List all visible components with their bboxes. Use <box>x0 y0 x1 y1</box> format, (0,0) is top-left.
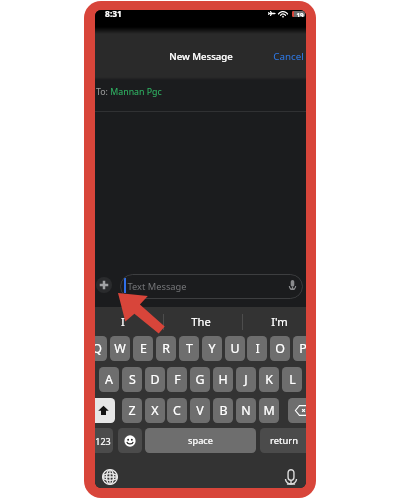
staticText: E <box>140 340 147 357</box>
button[interactable]: Backspace <box>288 398 306 423</box>
button[interactable]: O <box>270 336 290 361</box>
button[interactable]: A <box>99 367 119 392</box>
button[interactable]: N <box>236 398 256 423</box>
staticText: F <box>174 371 181 388</box>
staticText: Cancel <box>273 50 304 63</box>
staticText: S <box>129 371 136 388</box>
button[interactable]: T <box>179 336 199 361</box>
button[interactable]: I <box>95 312 162 331</box>
button[interactable]: U <box>225 336 245 361</box>
staticText: J <box>244 371 248 388</box>
staticText: V <box>196 402 204 419</box>
button[interactable]: Add attachment <box>96 277 112 293</box>
button[interactable]: The <box>162 312 240 331</box>
staticText: Text Message <box>127 280 187 293</box>
button[interactable]: Dictate <box>285 469 297 485</box>
button[interactable]: New Message <box>157 47 244 65</box>
staticText: I'm <box>271 314 288 329</box>
button[interactable]: L <box>282 367 302 392</box>
staticText: X <box>151 402 159 419</box>
staticText: C <box>173 402 181 419</box>
button[interactable]: V <box>190 398 210 423</box>
staticText: return <box>270 434 298 447</box>
button[interactable]: H <box>213 367 233 392</box>
button[interactable]: D <box>145 367 165 392</box>
button[interactable]: J <box>236 367 256 392</box>
staticText: N <box>241 402 251 419</box>
staticText: Z <box>128 402 136 419</box>
staticText: 123 <box>95 435 111 447</box>
staticText: I <box>121 314 125 329</box>
staticText: Mannan Pgc <box>110 86 162 98</box>
button[interactable]: Z <box>122 398 142 423</box>
staticText: U <box>230 340 240 357</box>
staticText: space <box>188 434 213 447</box>
staticText: To: <box>96 86 108 98</box>
button[interactable]: 123 <box>95 428 113 453</box>
button[interactable]: I <box>247 336 267 361</box>
staticText: P <box>299 340 306 357</box>
button[interactable]: return <box>260 428 306 453</box>
staticText: A <box>105 371 113 388</box>
staticText: H <box>218 371 228 388</box>
button[interactable]: M <box>259 398 279 423</box>
staticText: R <box>162 340 170 357</box>
button[interactable]: I'm <box>240 312 306 331</box>
staticText: 19 <box>296 11 304 17</box>
button[interactable]: space <box>145 428 256 453</box>
button[interactable]: B <box>213 398 233 423</box>
button[interactable]: Emoji <box>118 428 142 453</box>
staticText: Y <box>208 340 216 357</box>
button[interactable]: Text Message <box>120 274 303 299</box>
button[interactable]: P <box>293 336 306 361</box>
staticText: New Message <box>169 50 233 63</box>
staticText: W <box>114 340 126 357</box>
staticText: O <box>275 340 285 357</box>
staticText: T <box>186 340 193 357</box>
button[interactable]: C <box>167 398 187 423</box>
staticText: M <box>263 402 275 419</box>
button[interactable]: G <box>190 367 210 392</box>
staticText: I <box>255 340 260 357</box>
button[interactable]: S <box>122 367 142 392</box>
staticText: K <box>265 371 273 388</box>
button[interactable]: F <box>167 367 187 392</box>
staticText: L <box>289 371 296 388</box>
staticText: D <box>150 371 160 388</box>
button[interactable]: R <box>156 336 176 361</box>
button[interactable]: Shift <box>95 398 115 423</box>
button[interactable]: Q <box>95 336 107 361</box>
button[interactable]: K <box>259 367 279 392</box>
button[interactable]: X <box>145 398 165 423</box>
staticText: G <box>195 371 205 388</box>
button[interactable]: W <box>110 336 130 361</box>
staticText: 8:31 <box>105 10 122 19</box>
button[interactable]: Y <box>202 336 222 361</box>
staticText: The <box>191 314 211 329</box>
button[interactable]: Cancel <box>273 47 306 65</box>
button[interactable]: Change keyboard language <box>102 469 118 485</box>
staticText: Q <box>95 340 102 357</box>
button[interactable]: E <box>133 336 153 361</box>
staticText: B <box>219 402 228 419</box>
